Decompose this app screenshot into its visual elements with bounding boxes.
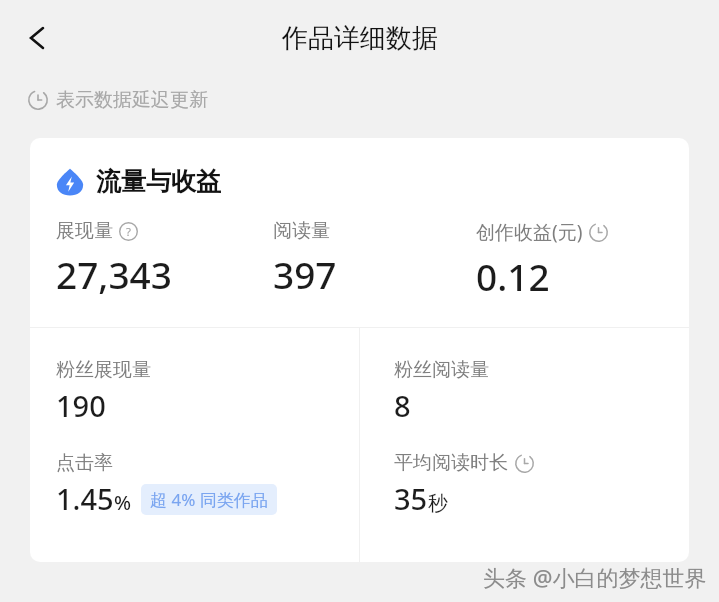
staticText: 27,343	[56, 249, 172, 299]
staticText: 展现量	[56, 219, 113, 243]
staticText: 作品详细数据	[282, 22, 438, 55]
staticText: 190	[56, 386, 106, 425]
staticText: 35	[394, 479, 428, 518]
staticText: 粉丝展现量	[56, 358, 151, 382]
staticText: 头条 @小白的梦想世界	[483, 562, 707, 592]
staticText: 点击率	[56, 451, 113, 475]
staticText: 0.12	[476, 251, 550, 301]
staticText: 平均阅读时长	[394, 451, 508, 475]
staticText: 超 4% 同类作品	[150, 488, 268, 511]
staticText: 397	[273, 249, 337, 299]
button[interactable]: Back	[14, 15, 60, 61]
button[interactable]: 超 4% 同类作品	[150, 488, 268, 511]
staticText: 表示数据延迟更新	[56, 88, 208, 112]
staticText: 粉丝阅读量	[394, 358, 489, 382]
staticText: ?	[126, 224, 131, 240]
staticText: 创作收益(元)	[476, 219, 583, 245]
staticText: 阅读量	[273, 219, 330, 243]
staticText: %	[114, 489, 132, 516]
staticText: 8	[394, 386, 411, 425]
staticText: 1.45	[56, 479, 114, 518]
staticText: 流量与收益	[96, 166, 221, 197]
staticText: 秒	[428, 491, 448, 516]
